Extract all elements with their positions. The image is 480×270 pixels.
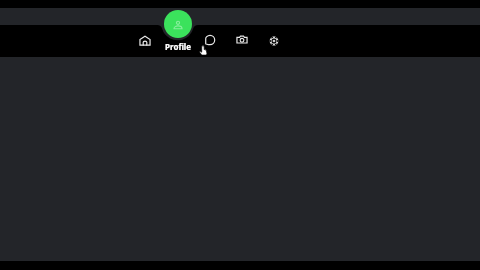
button[interactable]: Camera [230, 28, 254, 52]
button[interactable]: Home [133, 29, 157, 53]
button[interactable]: Settings [262, 29, 286, 53]
button[interactable]: Messages [198, 28, 222, 52]
staticText: Profile [165, 41, 192, 51]
button[interactable]: Profile [164, 10, 192, 38]
